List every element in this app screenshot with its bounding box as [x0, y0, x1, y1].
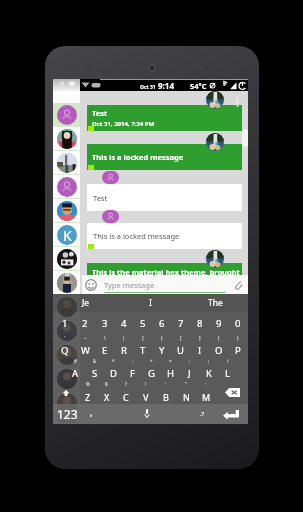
button[interactable]: Contact: [53, 175, 80, 199]
button[interactable]: ]: [190, 335, 209, 358]
button[interactable]: ,: [81, 404, 102, 424]
button[interactable]: (: [209, 335, 228, 358]
button[interactable]: Contact: [53, 271, 80, 295]
button[interactable]: Backspace: [216, 381, 248, 404]
button[interactable]: [: [171, 335, 190, 358]
button[interactable]: Contact: [53, 247, 80, 271]
button[interactable]: 5: [133, 312, 152, 335]
button[interactable]: Contact: [53, 151, 80, 175]
button[interactable]: 8: [190, 312, 209, 335]
button[interactable]: 3: [95, 312, 114, 335]
button[interactable]: %: [78, 381, 97, 404]
button[interactable]: !: [136, 381, 156, 404]
button[interactable]: 7: [171, 312, 190, 335]
button[interactable]: &: [85, 358, 104, 381]
button[interactable]: Voice input: [102, 404, 191, 424]
staticText: 8: [105, 381, 108, 387]
button[interactable]: The: [183, 294, 248, 312]
button[interactable]: Contact: [53, 295, 80, 319]
staticText: -: [132, 358, 134, 364]
button[interactable]: Contact: [53, 319, 80, 343]
staticText: :: [189, 358, 191, 364]
button[interactable]: ": [176, 381, 196, 404]
button[interactable]: Contact photo: [206, 133, 224, 151]
button[interactable]: 1: [55, 312, 75, 335]
button[interactable]: `: [55, 335, 75, 358]
button[interactable]: Contact: [53, 415, 80, 424]
button[interactable]: Contact photo: [206, 250, 224, 268]
staticText: The: [208, 297, 223, 309]
button[interactable]: ': [156, 381, 176, 404]
staticText: O: [215, 344, 223, 357]
staticText: 9: [216, 317, 222, 330]
button[interactable]: |: [114, 335, 133, 358]
button[interactable]: Contact: [53, 343, 80, 367]
staticText: ": [185, 381, 187, 387]
staticText: Je: [82, 297, 90, 309]
staticText: K: [206, 367, 212, 380]
button[interactable]: Test: [87, 184, 242, 211]
button[interactable]: Contact: [53, 127, 80, 151]
button[interactable]: This is a locked message: [87, 223, 242, 249]
button[interactable]: Contact: [53, 199, 80, 223]
staticText: 9:14: [158, 80, 174, 91]
button[interactable]: ?: [116, 381, 136, 404]
button[interactable]: Contact: [53, 223, 80, 247]
staticText: M: [202, 391, 211, 403]
button[interactable]: ): [228, 335, 247, 358]
staticText: This is the material hex theme, brought …: [92, 267, 242, 276]
button[interactable]: 123: [53, 404, 81, 424]
button[interactable]: ~: [75, 335, 95, 358]
button[interactable]: :: [196, 381, 216, 404]
staticText: ;: [208, 358, 210, 364]
button[interactable]: *: [104, 358, 123, 381]
button[interactable]: Contact photo: [206, 91, 224, 109]
staticText: J: [188, 367, 191, 380]
staticText: 4: [121, 317, 127, 330]
button[interactable]: -: [123, 358, 142, 381]
button[interactable]: Test: [87, 105, 242, 131]
staticText: .?: [200, 410, 205, 418]
button[interactable]: 2: [75, 312, 95, 335]
staticText: {: [142, 335, 144, 341]
button[interactable]: Contact: [53, 103, 80, 127]
button[interactable]: :: [180, 358, 199, 381]
staticText: !: [145, 381, 147, 387]
button[interactable]: =: [161, 358, 180, 381]
button[interactable]: 4: [114, 312, 133, 335]
button[interactable]: Shift: [53, 381, 78, 404]
button[interactable]: }: [152, 335, 171, 358]
staticText: 8: [197, 317, 203, 330]
button[interactable]: /: [218, 358, 237, 381]
button[interactable]: 6: [152, 312, 171, 335]
button[interactable]: Emoji: [85, 279, 97, 291]
button[interactable]: Contact: [53, 367, 80, 391]
button[interactable]: #: [66, 358, 85, 381]
staticText: /: [227, 358, 229, 364]
staticText: |: [122, 335, 125, 341]
staticText: &: [93, 358, 97, 364]
button[interactable]: 9: [209, 312, 228, 335]
button[interactable]: This is a locked message: [87, 144, 242, 170]
staticText: %: [86, 381, 90, 387]
staticText: 3: [102, 317, 108, 330]
staticText: This is a locked message: [92, 152, 184, 162]
button[interactable]: Contact: [102, 210, 119, 223]
button[interactable]: I: [118, 294, 183, 312]
button[interactable]: This is the material hex theme, brought …: [87, 263, 242, 276]
button[interactable]: \: [95, 335, 114, 358]
button[interactable]: Enter: [214, 404, 248, 424]
button[interactable]: 0: [228, 312, 247, 335]
button[interactable]: 8: [97, 381, 116, 404]
button[interactable]: Attach file: [232, 279, 244, 291]
button[interactable]: ;: [199, 358, 218, 381]
button[interactable]: Contact: [102, 171, 119, 184]
button[interactable]: Je: [53, 294, 118, 312]
button[interactable]: {: [133, 335, 152, 358]
button[interactable]: Contact: [53, 391, 80, 415]
staticText: [: [180, 335, 182, 341]
button[interactable]: +: [142, 358, 161, 381]
staticText: U: [177, 344, 184, 357]
button[interactable]: .?: [191, 404, 214, 424]
staticText: ,: [90, 406, 93, 418]
